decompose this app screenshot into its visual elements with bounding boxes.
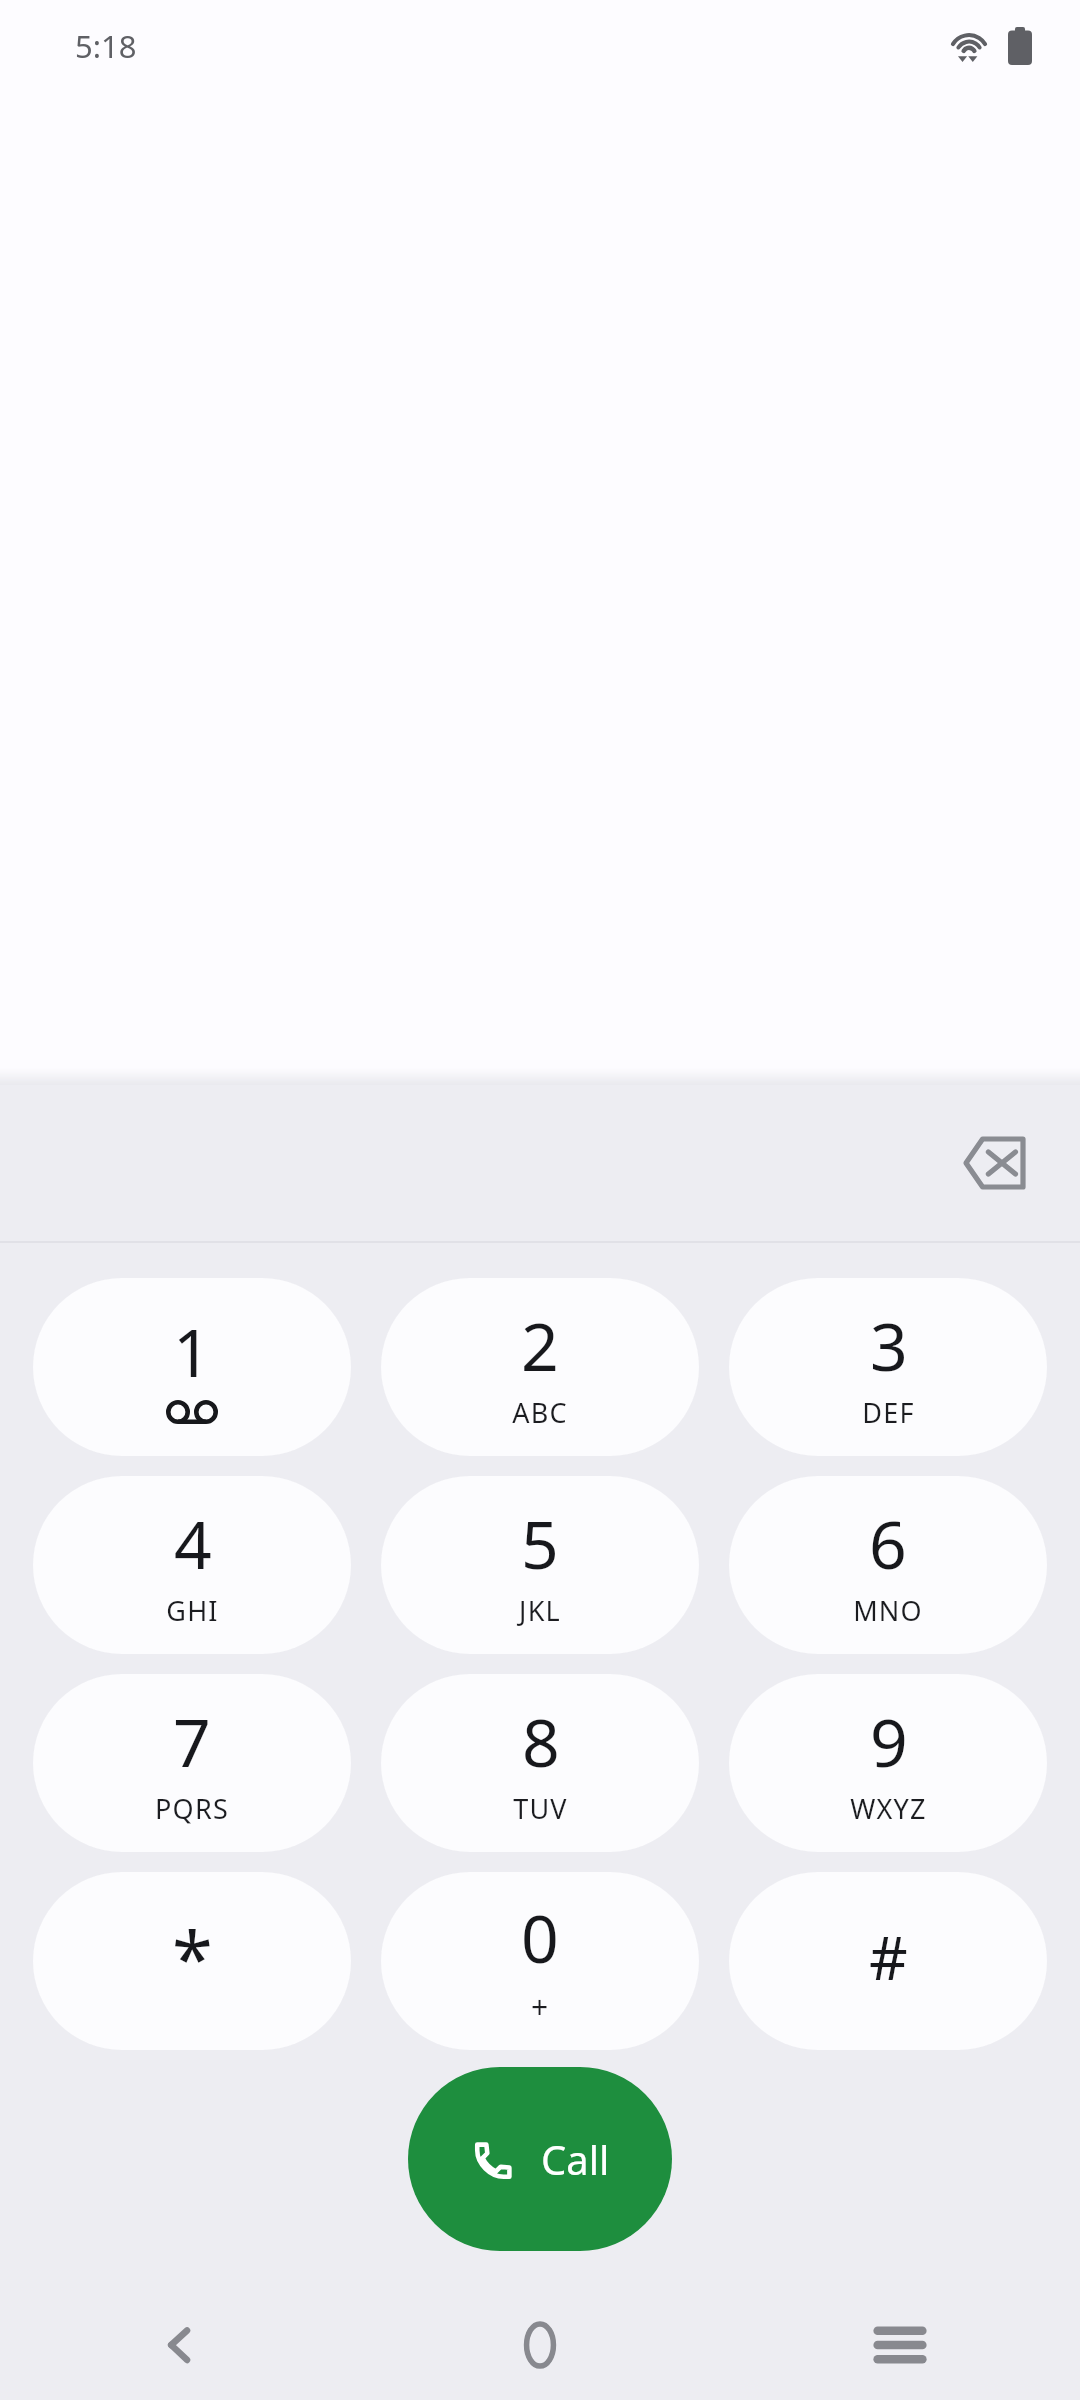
staticText: 3: [870, 1300, 908, 1390]
button[interactable]: 8: [381, 1674, 699, 1852]
staticText: TUV: [513, 1790, 568, 1827]
staticText: *: [172, 1907, 213, 2008]
staticText: WXYZ: [850, 1790, 927, 1827]
staticText: MNO: [853, 1592, 923, 1629]
staticText: #: [869, 1916, 908, 1998]
staticText: 5: [521, 1498, 559, 1588]
staticText: JKL: [519, 1592, 561, 1629]
button[interactable]: Call: [408, 2067, 672, 2251]
staticText: 8: [522, 1696, 560, 1786]
button[interactable]: #: [729, 1872, 1047, 2050]
staticText: 1: [173, 1306, 211, 1396]
button[interactable]: 9: [729, 1674, 1047, 1852]
staticText: 6: [869, 1498, 907, 1588]
staticText: 7: [173, 1696, 211, 1786]
button[interactable]: 4: [33, 1476, 351, 1654]
button[interactable]: Backspace: [940, 1108, 1050, 1218]
staticText: GHI: [166, 1592, 219, 1629]
staticText: PQRS: [155, 1790, 229, 1827]
staticText: ABC: [512, 1394, 568, 1431]
staticText: 0: [521, 1892, 559, 1982]
staticText: DEF: [862, 1394, 915, 1431]
button[interactable]: Back: [0, 2290, 360, 2400]
button[interactable]: 0: [381, 1872, 699, 2050]
button[interactable]: 6: [729, 1476, 1047, 1654]
button[interactable]: 5: [381, 1476, 699, 1654]
button[interactable]: 1: [33, 1278, 351, 1456]
button[interactable]: Home: [360, 2290, 720, 2400]
staticText: 4: [174, 1498, 212, 1588]
staticText: Call: [541, 2132, 610, 2186]
button[interactable]: *: [33, 1872, 351, 2050]
staticText: 5:18: [75, 25, 137, 67]
button[interactable]: Recent apps: [720, 2290, 1080, 2400]
staticText: +: [531, 1986, 549, 2027]
staticText: 9: [870, 1696, 908, 1786]
staticText: 2: [521, 1300, 559, 1390]
button[interactable]: 3: [729, 1278, 1047, 1456]
button[interactable]: 2: [381, 1278, 699, 1456]
button[interactable]: 7: [33, 1674, 351, 1852]
